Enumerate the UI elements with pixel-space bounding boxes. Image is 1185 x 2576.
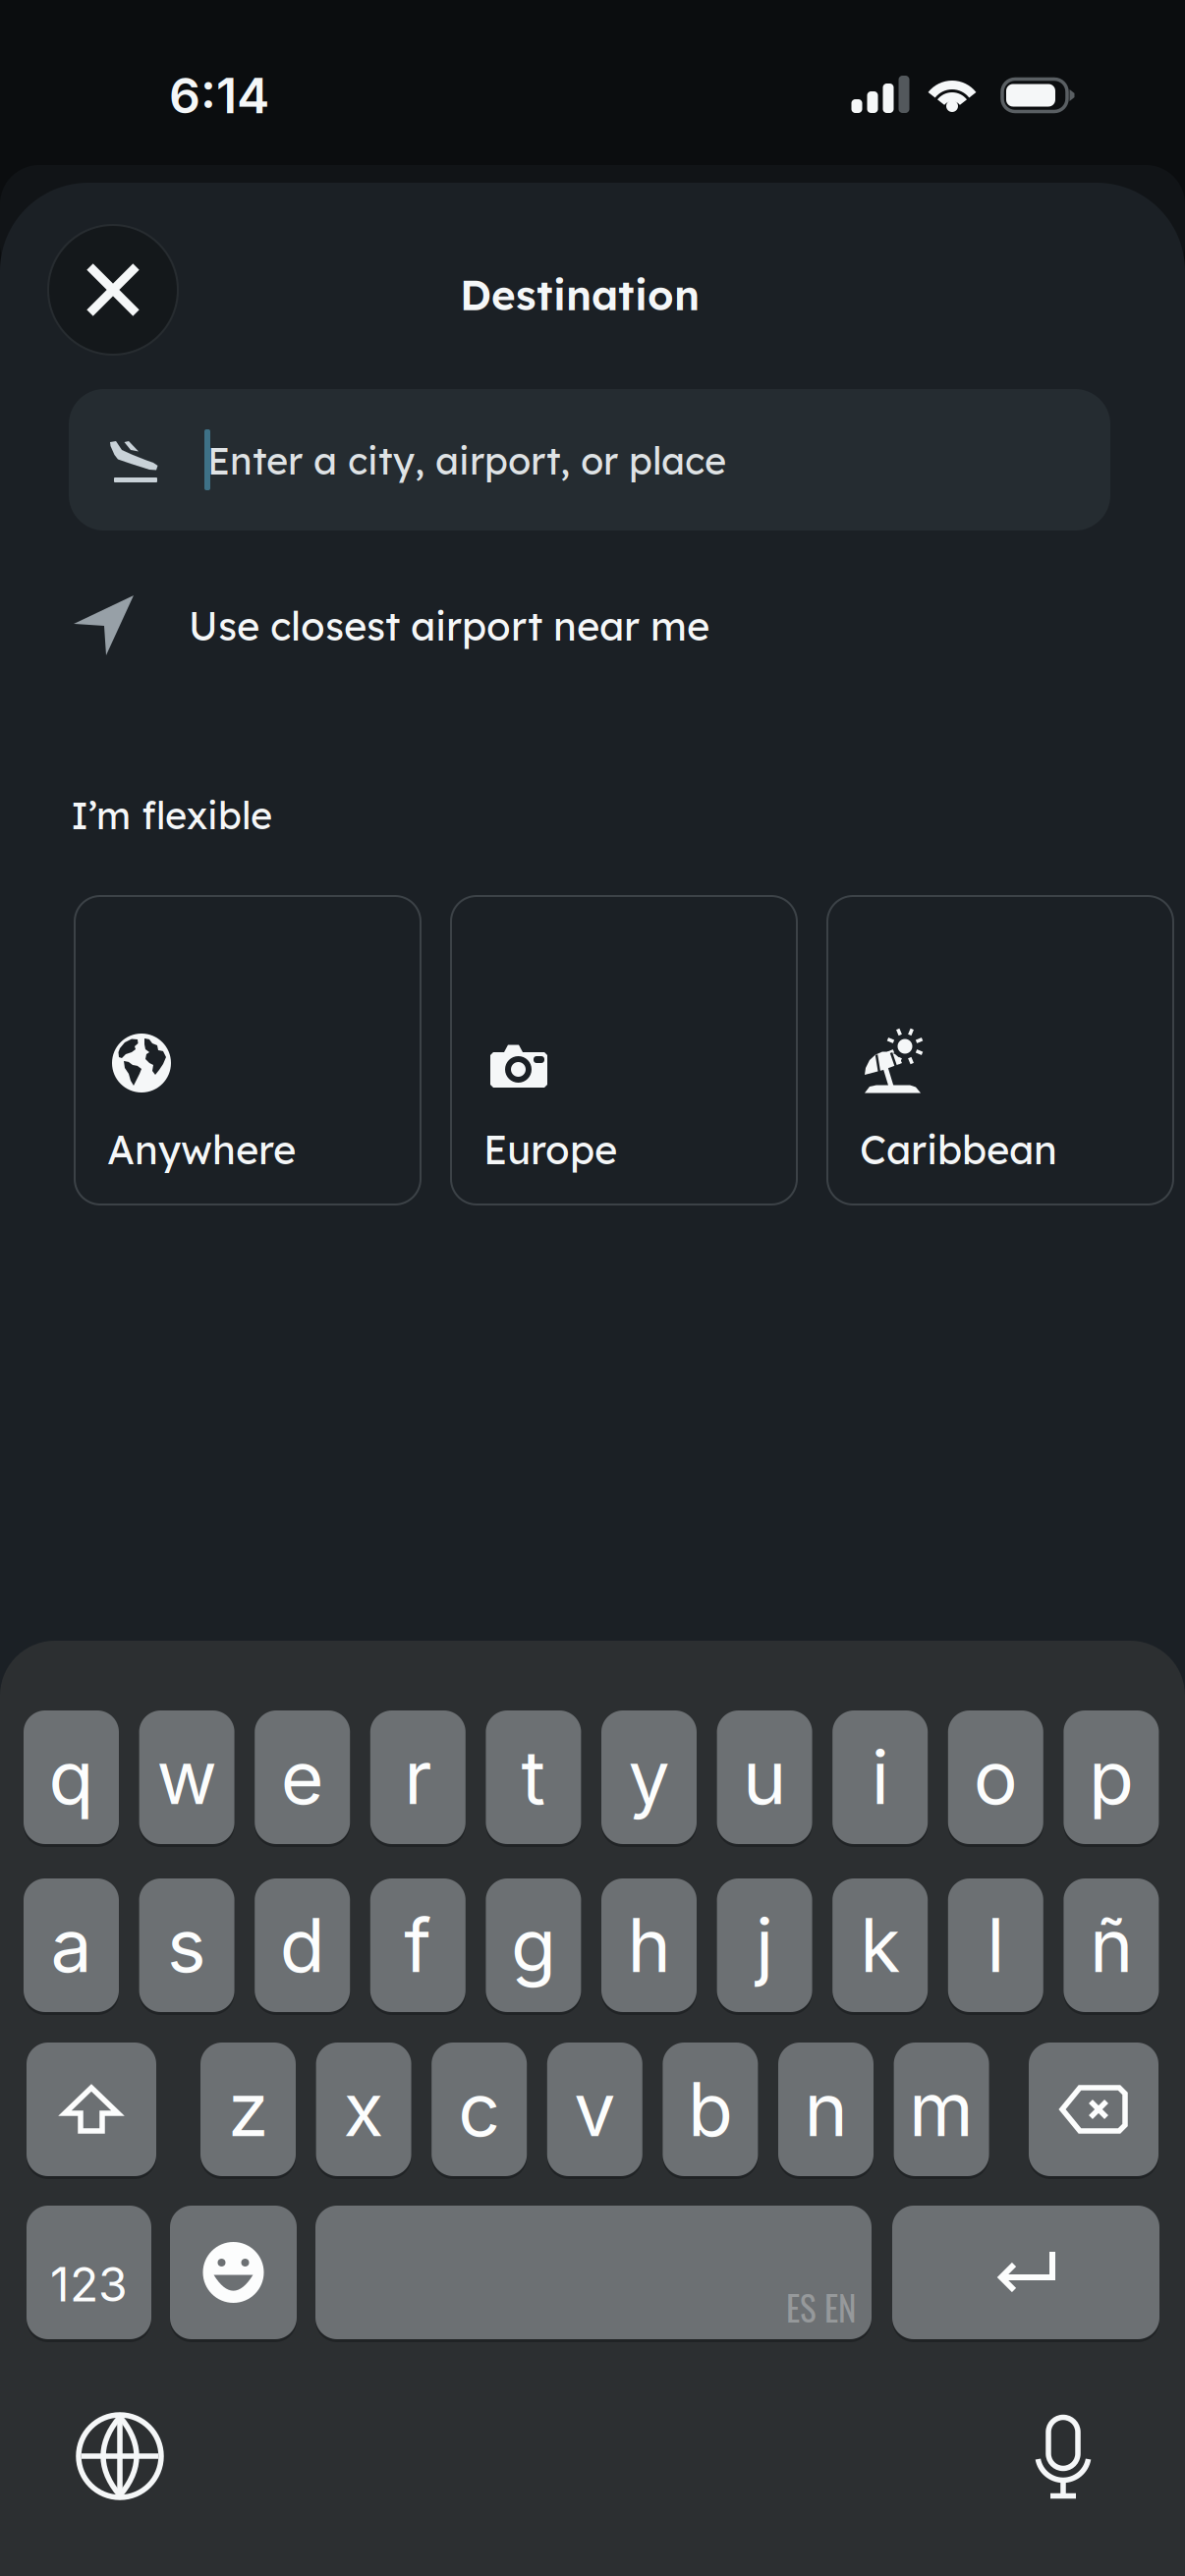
- button[interactable]: h: [601, 1878, 697, 2012]
- staticText: y: [628, 1733, 670, 1822]
- button[interactable]: n: [778, 2043, 874, 2176]
- button[interactable]: Caribbean: [827, 896, 1173, 1204]
- button[interactable]: w: [139, 1710, 234, 1844]
- staticText: o: [974, 1733, 1018, 1822]
- staticText: w: [157, 1733, 217, 1822]
- button[interactable]: u: [717, 1710, 812, 1844]
- staticText: Anywhere: [107, 1125, 296, 1174]
- staticText: b: [688, 2065, 733, 2154]
- button[interactable]: m: [894, 2043, 989, 2176]
- staticText: f: [404, 1901, 432, 1990]
- button[interactable]: Return: [892, 2206, 1159, 2339]
- button[interactable]: i: [832, 1710, 928, 1844]
- button[interactable]: b: [663, 2043, 758, 2176]
- staticText: t: [521, 1733, 546, 1822]
- staticText: ñ: [1090, 1901, 1133, 1990]
- staticText: d: [280, 1901, 325, 1990]
- staticText: r: [404, 1733, 432, 1822]
- staticText: c: [458, 2065, 500, 2154]
- button[interactable]: v: [547, 2043, 642, 2176]
- button[interactable]: r: [370, 1710, 466, 1844]
- button[interactable]: y: [601, 1710, 697, 1844]
- staticText: v: [574, 2065, 615, 2154]
- staticText: Europe: [483, 1125, 617, 1174]
- staticText: n: [804, 2065, 847, 2154]
- staticText: h: [627, 1901, 671, 1990]
- button[interactable]: Delete: [1029, 2043, 1158, 2176]
- button[interactable]: a: [24, 1878, 119, 2012]
- button[interactable]: k: [832, 1878, 928, 2012]
- staticText: 123: [50, 2256, 128, 2313]
- staticText: Use closest airport near me: [189, 601, 709, 650]
- staticText: 6:14: [169, 66, 269, 125]
- button[interactable]: Shift: [27, 2043, 156, 2176]
- button[interactable]: Next keyboard: [71, 2407, 169, 2505]
- staticText: Enter a city, airport, or place: [207, 437, 726, 484]
- button[interactable]: j: [717, 1878, 812, 2012]
- button[interactable]: x: [316, 2043, 411, 2176]
- staticText: m: [909, 2065, 974, 2154]
- button[interactable]: Use closest airport near me: [74, 594, 722, 659]
- staticText: ES EN: [786, 2281, 856, 2332]
- staticText: e: [281, 1733, 324, 1822]
- button[interactable]: s: [139, 1878, 234, 2012]
- button[interactable]: z: [200, 2043, 296, 2176]
- button[interactable]: f: [370, 1878, 466, 2012]
- button[interactable]: Anywhere: [75, 896, 421, 1204]
- button[interactable]: e: [255, 1710, 350, 1844]
- staticText: p: [1089, 1733, 1134, 1822]
- button[interactable]: t: [486, 1710, 581, 1844]
- staticText: s: [167, 1901, 206, 1990]
- button[interactable]: q: [24, 1710, 119, 1844]
- button[interactable]: d: [255, 1878, 350, 2012]
- staticText: u: [743, 1733, 786, 1822]
- staticText: Destination: [460, 269, 700, 321]
- button[interactable]: c: [432, 2043, 527, 2176]
- button[interactable]: Europe: [451, 896, 797, 1204]
- button[interactable]: Emoji: [170, 2206, 297, 2339]
- staticText: Caribbean: [860, 1125, 1057, 1174]
- button[interactable]: Space: [315, 2206, 872, 2339]
- staticText: a: [51, 1901, 92, 1990]
- button[interactable]: g: [486, 1878, 581, 2012]
- staticText: q: [49, 1733, 94, 1822]
- button[interactable]: Dictation: [1014, 2409, 1112, 2507]
- staticText: x: [344, 2065, 384, 2154]
- button[interactable]: 123: [27, 2206, 151, 2339]
- staticText: j: [756, 1901, 773, 1990]
- button[interactable]: ñ: [1064, 1878, 1159, 2012]
- button[interactable]: Close: [48, 225, 178, 355]
- staticText: I’m flexible: [71, 792, 272, 839]
- staticText: g: [511, 1901, 556, 1990]
- staticText: z: [228, 2065, 268, 2154]
- staticText: k: [860, 1901, 900, 1990]
- button[interactable]: p: [1064, 1710, 1159, 1844]
- staticText: i: [871, 1733, 889, 1822]
- staticText: l: [987, 1901, 1004, 1990]
- button[interactable]: o: [948, 1710, 1043, 1844]
- button[interactable]: l: [948, 1878, 1043, 2012]
